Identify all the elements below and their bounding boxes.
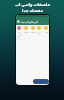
staticText: الرسائل الجديدة: [21, 20, 38, 23]
staticText: ملصقات واتس اب: [15, 2, 50, 7]
staticText: ضحك: [24, 31, 29, 33]
staticText: حزن: [37, 31, 41, 33]
staticText: غضب: [44, 31, 49, 33]
button[interactable]: Download: [33, 79, 49, 84]
button[interactable]: حب: [16, 26, 22, 33]
button[interactable]: حزن: [36, 26, 42, 33]
button[interactable]: سعيد: [30, 26, 36, 33]
button[interactable]: غضب: [43, 26, 49, 33]
staticText: مفضلة جدا: [22, 8, 43, 13]
staticText: سعيد: [31, 31, 36, 33]
button[interactable]: الرسائل الجديدة: [16, 17, 49, 25]
staticText: حب: [17, 31, 21, 33]
button[interactable]: ضحك: [23, 26, 29, 33]
